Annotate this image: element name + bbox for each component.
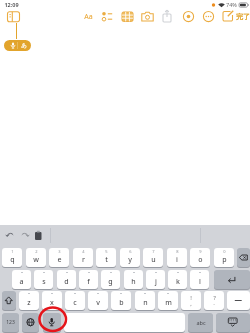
staticText: 74% xyxy=(226,1,237,8)
button[interactable] xyxy=(5,9,23,24)
button[interactable]: あ xyxy=(4,40,31,51)
staticText: 7 xyxy=(152,249,155,254)
staticText: 6 xyxy=(129,249,132,254)
button[interactable] xyxy=(43,313,61,332)
staticText: g xyxy=(108,277,113,287)
staticText: p xyxy=(222,255,227,265)
button[interactable] xyxy=(121,10,134,23)
staticText: a xyxy=(19,277,24,287)
button[interactable]: 完了 xyxy=(235,10,250,22)
button[interactable]: m xyxy=(158,291,178,310)
button[interactable]: k xyxy=(168,270,187,289)
staticText: m xyxy=(165,298,172,308)
button[interactable] xyxy=(221,9,235,23)
staticText: h xyxy=(131,277,136,287)
staticText: ! xyxy=(190,294,192,302)
staticText: 123 xyxy=(6,319,15,326)
button[interactable] xyxy=(202,10,215,23)
staticText: 完了 xyxy=(236,12,250,21)
staticText: b xyxy=(119,298,124,308)
button[interactable] xyxy=(141,10,154,23)
button[interactable]: s xyxy=(34,270,53,289)
button[interactable] xyxy=(182,10,195,23)
button[interactable] xyxy=(216,313,250,332)
staticText: 4 xyxy=(82,249,85,254)
staticText: k xyxy=(176,277,180,287)
button[interactable]: 1 xyxy=(2,248,22,267)
staticText: 8 xyxy=(176,249,179,254)
button[interactable]: 123 xyxy=(2,313,19,332)
button[interactable]: 0 xyxy=(214,248,234,267)
button[interactable]: f xyxy=(79,270,98,289)
button[interactable]: l xyxy=(190,270,209,289)
staticText: , xyxy=(190,300,192,308)
button[interactable]: 2 xyxy=(26,248,46,267)
button[interactable]: Aa xyxy=(81,10,95,23)
staticText: 2 xyxy=(35,249,38,254)
staticText: 3 xyxy=(58,249,61,254)
button[interactable]: 6 xyxy=(120,248,140,267)
staticText: e xyxy=(57,255,62,265)
staticText: x xyxy=(50,298,54,308)
staticText: 12:09 xyxy=(4,1,19,8)
staticText: q xyxy=(10,255,15,265)
button[interactable] xyxy=(22,313,39,332)
staticText: 9 xyxy=(199,249,202,254)
button[interactable]: z xyxy=(19,291,39,310)
button[interactable]: h xyxy=(124,270,143,289)
button[interactable]: 3 xyxy=(49,248,69,267)
staticText: c xyxy=(73,298,77,308)
button[interactable]: b xyxy=(111,291,131,310)
button[interactable]: j xyxy=(146,270,165,289)
button[interactable]: n xyxy=(135,291,155,310)
staticText: w xyxy=(33,255,39,265)
staticText: l xyxy=(199,277,201,287)
button[interactable]: 8 xyxy=(167,248,187,267)
staticText: Aa xyxy=(84,12,93,22)
button[interactable]: abc xyxy=(188,313,213,332)
button[interactable]: x xyxy=(42,291,62,310)
staticText: n xyxy=(143,298,148,308)
button[interactable]: d xyxy=(57,270,76,289)
staticText: 1 xyxy=(11,249,14,254)
button[interactable]: 4 xyxy=(73,248,93,267)
button[interactable]: 5 xyxy=(96,248,116,267)
button[interactable]: ? xyxy=(204,291,224,310)
button[interactable]: v xyxy=(88,291,108,310)
staticText: 0 xyxy=(223,249,226,254)
button[interactable] xyxy=(101,10,114,23)
button[interactable] xyxy=(214,270,250,289)
button[interactable] xyxy=(64,313,185,332)
staticText: y xyxy=(128,255,132,265)
staticText: . xyxy=(213,299,215,307)
button[interactable]: a xyxy=(12,270,31,289)
button[interactable]: ! xyxy=(181,291,201,310)
staticText: v xyxy=(96,298,100,308)
staticText: o xyxy=(198,255,203,265)
staticText: s xyxy=(42,277,46,287)
staticText: abc xyxy=(196,319,206,326)
staticText: f xyxy=(87,277,90,287)
staticText: ? xyxy=(213,294,216,302)
staticText: d xyxy=(64,277,69,287)
staticText: 5 xyxy=(105,249,108,254)
button[interactable]: 7 xyxy=(143,248,163,267)
button[interactable]: c xyxy=(65,291,85,310)
staticText: j xyxy=(155,277,157,287)
button[interactable] xyxy=(227,291,250,310)
staticText: r xyxy=(82,255,85,265)
staticText: あ xyxy=(21,42,27,49)
staticText: u xyxy=(151,255,156,265)
button[interactable] xyxy=(2,291,16,310)
staticText: z xyxy=(27,298,31,308)
button[interactable]: 9 xyxy=(190,248,210,267)
button[interactable]: g xyxy=(101,270,120,289)
staticText: i xyxy=(176,255,178,265)
button[interactable] xyxy=(161,9,173,23)
staticText: t xyxy=(105,255,108,265)
button[interactable] xyxy=(237,248,250,267)
